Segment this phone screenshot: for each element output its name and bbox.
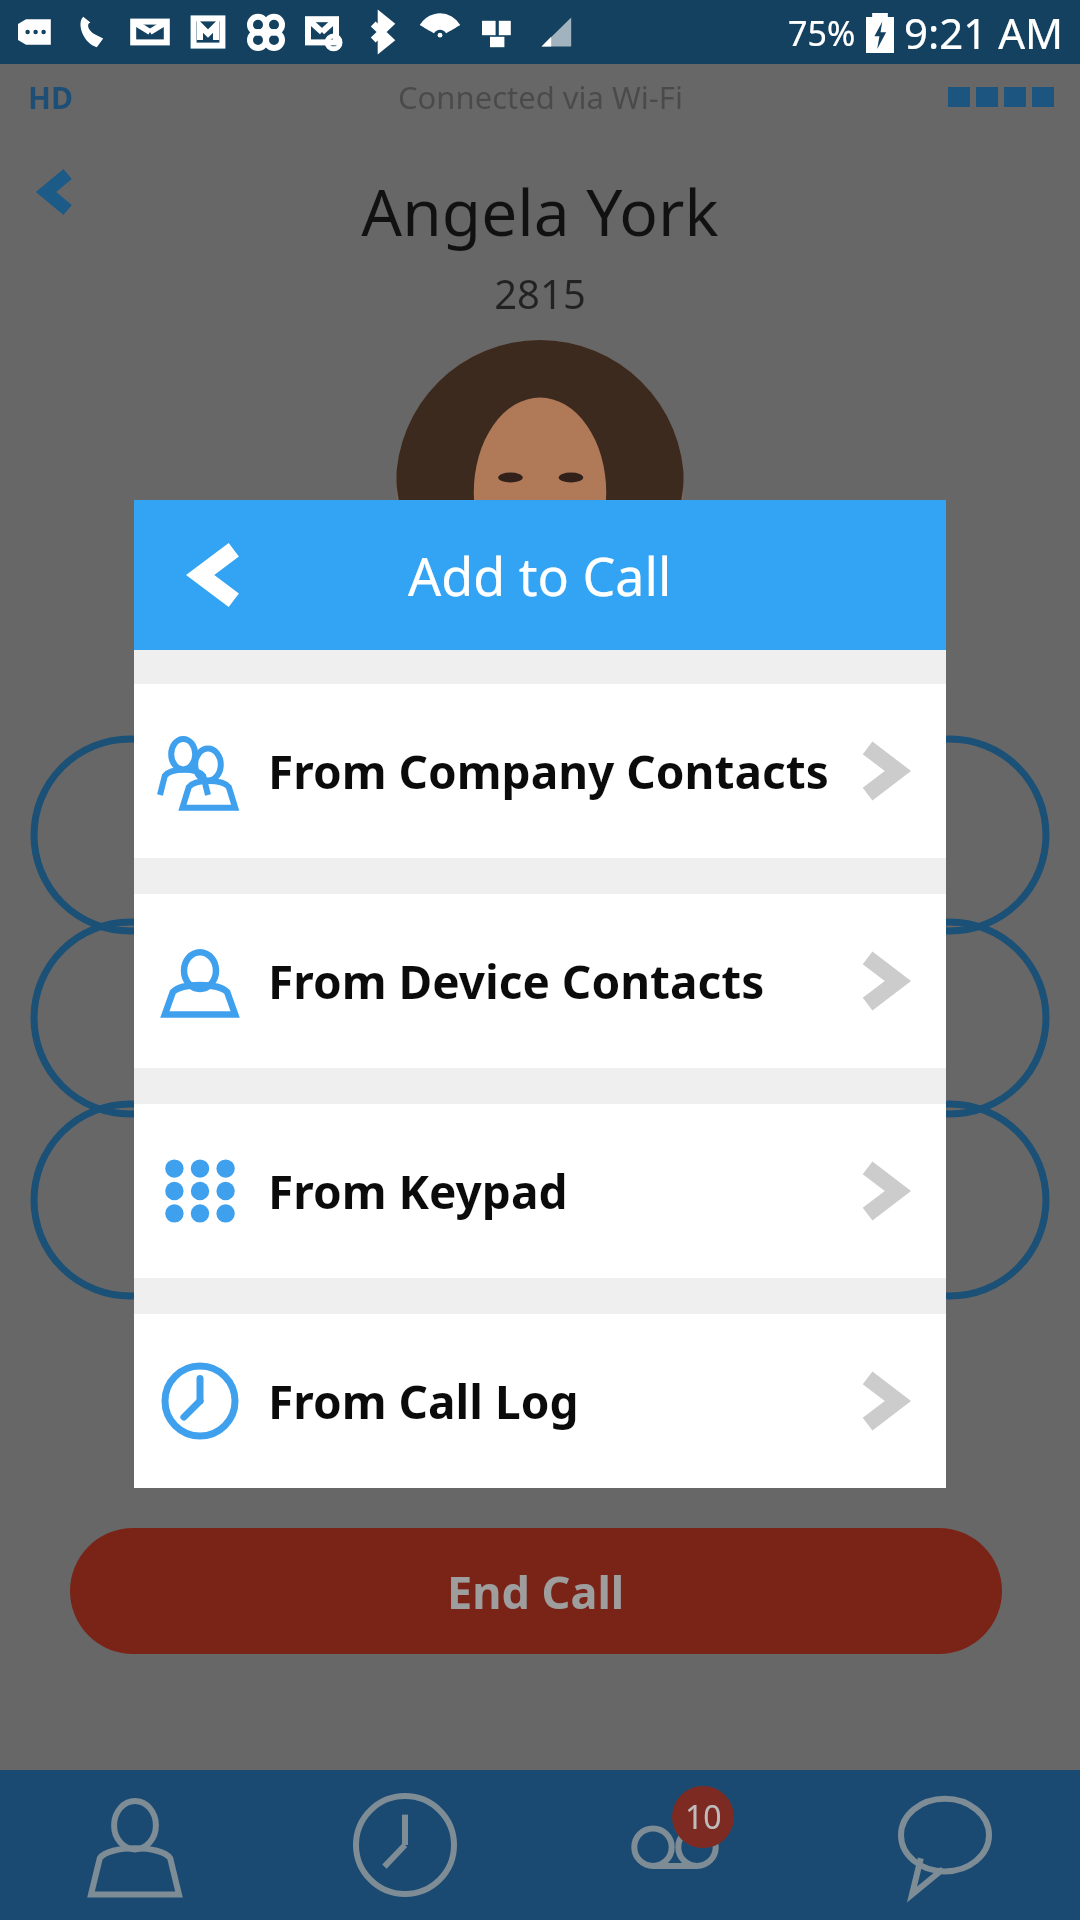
button[interactable]: Back xyxy=(182,540,252,610)
button[interactable]: Back xyxy=(28,162,88,222)
button[interactable]: Voicemail xyxy=(540,1770,810,1920)
staticText: From Company Contacts xyxy=(268,740,846,803)
staticText: 2815 xyxy=(0,266,1080,320)
button[interactable]: Messages xyxy=(810,1770,1080,1920)
button[interactable]: From Device Contacts xyxy=(134,894,946,1068)
staticText: From Device Contacts xyxy=(268,950,846,1013)
staticText: From Call Log xyxy=(268,1370,846,1433)
button[interactable]: Recents xyxy=(270,1770,540,1920)
staticText: Angela York xyxy=(0,168,1080,255)
staticText: From Keypad xyxy=(268,1160,846,1223)
staticText: Connected via Wi-Fi xyxy=(398,76,683,118)
button[interactable]: From Keypad xyxy=(134,1104,946,1278)
staticText: 75% xyxy=(788,10,856,56)
button[interactable]: Contacts xyxy=(0,1770,270,1920)
staticText: HD xyxy=(28,77,73,118)
button[interactable]: End Call xyxy=(70,1528,1002,1654)
button[interactable]: From Company Contacts xyxy=(134,684,946,858)
staticText: 10 xyxy=(685,1795,722,1839)
staticText: Add to Call xyxy=(408,540,672,611)
staticText: 9:21 AM xyxy=(904,4,1064,61)
button[interactable]: From Call Log xyxy=(134,1314,946,1488)
staticText: End Call xyxy=(447,1561,625,1622)
